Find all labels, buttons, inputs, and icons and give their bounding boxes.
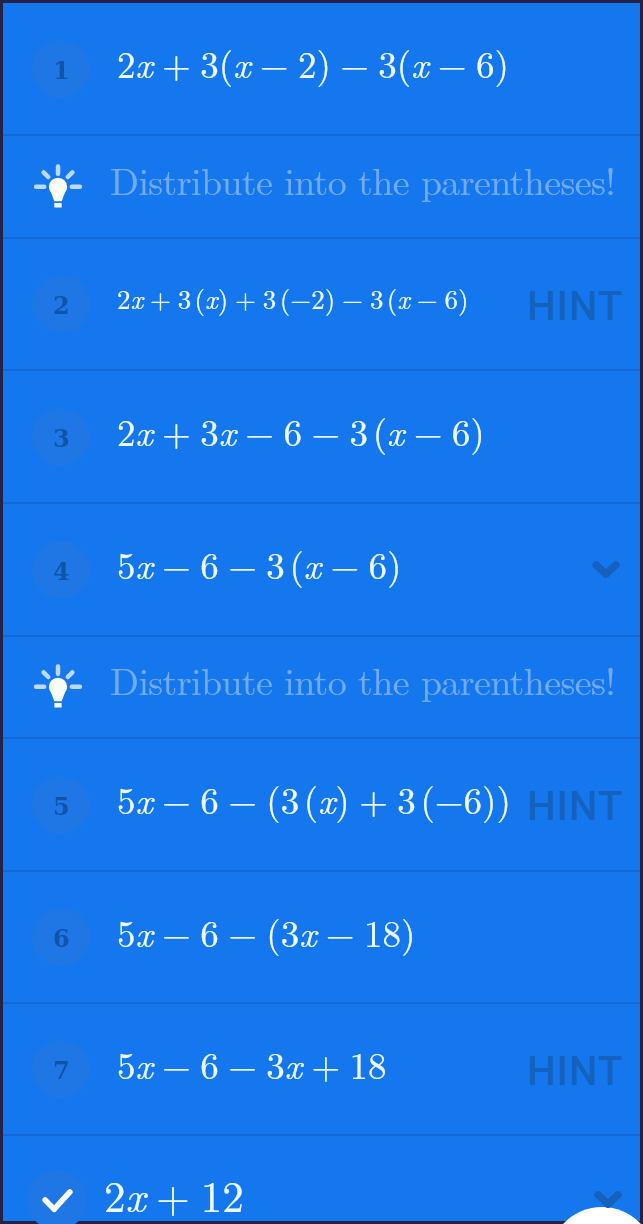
staticText: 5 [53,792,70,820]
other: Solved [27,1170,87,1224]
staticText: 2x + 12 [104,1150,244,1224]
staticText: Distribute into the parentheses! [110,652,616,706]
staticText: 7 [53,1056,70,1084]
staticText: HINT [527,282,624,329]
staticText: 6 [53,924,70,952]
button[interactable]: Solved [3,1136,640,1221]
staticText: Distribute into the parentheses! [110,152,616,206]
other: Hint [33,160,83,210]
staticText: 5x − 6 − (3 (x) + 3 (−6)) [117,761,511,828]
staticText: 2x + 3(x − 2) − 3(x − 6) [117,25,509,92]
staticText: 2x + 3 (x) + 3 (−2) − 3 (x − 6) [117,270,469,319]
staticText: 1 [53,56,70,84]
button[interactable]: Expand [593,1185,623,1215]
staticText: 2 [53,291,70,319]
staticText: 5x − 6 − 3 (x − 6) [117,526,402,593]
button[interactable]: Next step [549,1207,643,1224]
button[interactable]: 6 [3,872,640,1002]
staticText: 5x − 6 − 3x + 18 [117,1026,387,1093]
button[interactable]: 1 [3,3,640,134]
button[interactable]: 4 [3,504,640,635]
staticText: HINT [527,782,624,829]
button[interactable]: Expand step [591,555,621,585]
staticText: 5x − 6 − (3x − 18) [117,894,416,961]
button[interactable]: 3 [3,371,640,502]
staticText: 2x + 3x − 6 − 3 (x − 6) [117,393,485,460]
staticText: 3 [53,424,70,452]
button[interactable]: 2 [3,239,640,369]
staticText: 4 [53,557,70,585]
other: Hint [33,660,83,710]
staticText: HINT [527,1047,624,1094]
button[interactable]: 5 [3,739,640,870]
button[interactable]: 7 [3,1004,640,1134]
button[interactable]: Hint [3,136,640,237]
button[interactable]: Hint [3,637,640,737]
